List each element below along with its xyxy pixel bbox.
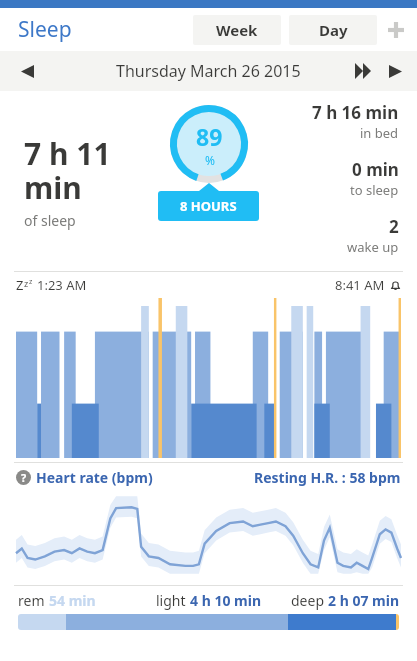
button[interactable]: 8 HOURS bbox=[158, 191, 259, 221]
staticText: 4 h 10 min bbox=[190, 591, 261, 610]
staticText: in bed bbox=[360, 124, 399, 142]
staticText: wake up bbox=[347, 238, 399, 256]
button[interactable]: Fast forward bbox=[347, 55, 379, 87]
staticText: light bbox=[156, 591, 190, 610]
staticText: z bbox=[29, 277, 33, 287]
button[interactable]: Week bbox=[193, 15, 281, 45]
staticText: 2 bbox=[389, 215, 399, 238]
button[interactable]: Previous bbox=[10, 54, 44, 88]
staticText: 2 h 07 min bbox=[328, 591, 399, 610]
button[interactable]: Next bbox=[379, 55, 411, 87]
other: Help bbox=[16, 470, 31, 485]
button[interactable]: deep bbox=[291, 591, 399, 610]
staticText: ? bbox=[21, 470, 27, 485]
staticText: z bbox=[24, 277, 29, 289]
button[interactable]: light bbox=[156, 591, 261, 610]
staticText: 54 min bbox=[49, 591, 96, 610]
staticText: Thursday March 26 2015 bbox=[116, 60, 301, 82]
staticText: Sleep bbox=[18, 15, 72, 44]
staticText: % bbox=[205, 152, 215, 168]
staticText: to sleep bbox=[350, 181, 399, 199]
staticText: Heart rate (bpm) bbox=[36, 468, 153, 487]
staticText: 8:41 AM bbox=[335, 276, 385, 294]
button[interactable] bbox=[18, 614, 399, 630]
staticText: deep bbox=[291, 591, 328, 610]
button[interactable]: rem bbox=[18, 591, 96, 610]
staticText: Day bbox=[319, 20, 348, 40]
staticText: Resting H.R. : 58 bpm bbox=[254, 468, 401, 487]
button[interactable]: Day bbox=[289, 15, 377, 45]
staticText: of sleep bbox=[24, 211, 76, 230]
staticText: Week bbox=[216, 20, 258, 40]
staticText: 1:23 AM bbox=[37, 276, 87, 294]
staticText: Z bbox=[16, 276, 24, 294]
staticText: rem bbox=[18, 591, 49, 610]
staticText: 0 min bbox=[352, 158, 399, 181]
staticText: 7 h 11 min bbox=[24, 133, 111, 207]
staticText: 7 h 16 min bbox=[312, 101, 399, 124]
staticText: 89 bbox=[196, 121, 223, 152]
button[interactable]: Help bbox=[16, 468, 153, 487]
button[interactable]: Add bbox=[383, 17, 409, 43]
staticText: 8 HOURS bbox=[180, 197, 237, 215]
